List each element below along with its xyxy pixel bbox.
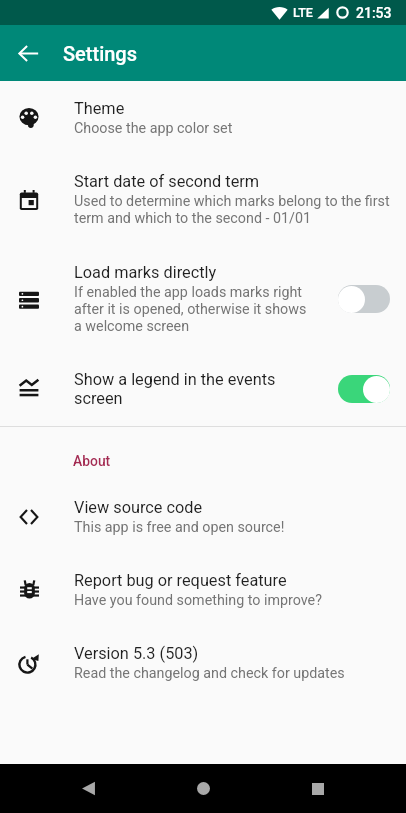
staticText: Choose the app color set: [74, 120, 233, 137]
button[interactable]: Show a legend in the events screen: [0, 352, 406, 426]
staticText: Used to determine which marks belong to …: [74, 193, 390, 227]
button[interactable]: Switch off: [338, 285, 390, 313]
button[interactable]: Load marks directly: [0, 245, 406, 352]
staticText: This app is free and open source!: [74, 519, 285, 536]
staticText: LTE: [293, 5, 313, 20]
button[interactable]: Report bug or request feature: [0, 553, 406, 626]
button[interactable]: Recent apps: [291, 764, 345, 813]
staticText: Load marks directly: [74, 263, 217, 282]
staticText: Show a legend in the events screen: [74, 370, 316, 408]
staticText: Have you found something to improve?: [74, 592, 322, 609]
staticText: Settings: [63, 42, 138, 65]
button[interactable]: Version 5.3 (503): [0, 626, 406, 700]
staticText: Start date of second term: [74, 172, 260, 191]
button[interactable]: Navigate up: [0, 25, 56, 81]
button[interactable]: View source code: [0, 480, 406, 553]
staticText: Theme: [74, 99, 125, 118]
staticText: Report bug or request feature: [74, 571, 287, 590]
button[interactable]: Home: [176, 764, 230, 813]
staticText: Version 5.3 (503): [74, 644, 199, 663]
button[interactable]: Back: [61, 764, 115, 813]
staticText: 21:53: [356, 5, 392, 21]
button[interactable]: Switch on: [338, 375, 390, 403]
button[interactable]: Theme: [0, 81, 406, 154]
staticText: Read the changelog and check for updates: [74, 665, 345, 682]
staticText: About: [73, 453, 111, 469]
staticText: View source code: [74, 498, 203, 517]
button[interactable]: Start date of second term: [0, 154, 406, 245]
staticText: If enabled the app loads marks right aft…: [74, 284, 316, 335]
